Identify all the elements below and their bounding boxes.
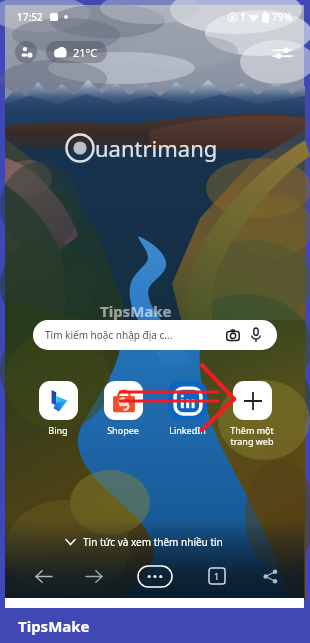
button[interactable]: Forward bbox=[73, 559, 115, 593]
staticText: uantrimang bbox=[95, 133, 218, 163]
staticText: LinkedIn bbox=[169, 424, 206, 436]
button[interactable]: Tin tức và xem thêm nhiều tin bbox=[65, 531, 223, 553]
button[interactable]: Account bbox=[15, 41, 37, 63]
button[interactable]: Back bbox=[22, 559, 64, 593]
staticText: Thêm một trang web bbox=[230, 424, 274, 447]
button[interactable]: Tabs bbox=[196, 559, 238, 593]
staticText: 79% bbox=[272, 10, 292, 24]
staticText: Bing bbox=[48, 424, 68, 436]
staticText: TipsMake bbox=[100, 301, 172, 321]
button[interactable]: 21°C bbox=[46, 41, 107, 63]
button[interactable]: LinkedIn bbox=[157, 381, 217, 436]
staticText: Tìm kiếm hoặc nhập địa c... bbox=[45, 328, 173, 342]
staticText: Tin tức và xem thêm nhiều tin bbox=[83, 535, 223, 549]
staticText: 21°C bbox=[73, 45, 98, 60]
staticText: 17:52 bbox=[17, 10, 43, 24]
button[interactable]: Thêm một trang web bbox=[222, 381, 282, 447]
button[interactable]: Shopee bbox=[93, 381, 153, 436]
button[interactable]: More options bbox=[134, 559, 176, 593]
staticText: 1 bbox=[214, 570, 220, 582]
staticText: Shopee bbox=[107, 424, 139, 436]
button[interactable]: Tìm kiếm hoặc nhập địa c... bbox=[33, 320, 277, 350]
staticText: TipsMake bbox=[18, 616, 90, 636]
button[interactable]: Bing bbox=[28, 381, 88, 436]
button[interactable]: Customize bbox=[270, 41, 294, 65]
button[interactable]: Share bbox=[249, 559, 291, 593]
